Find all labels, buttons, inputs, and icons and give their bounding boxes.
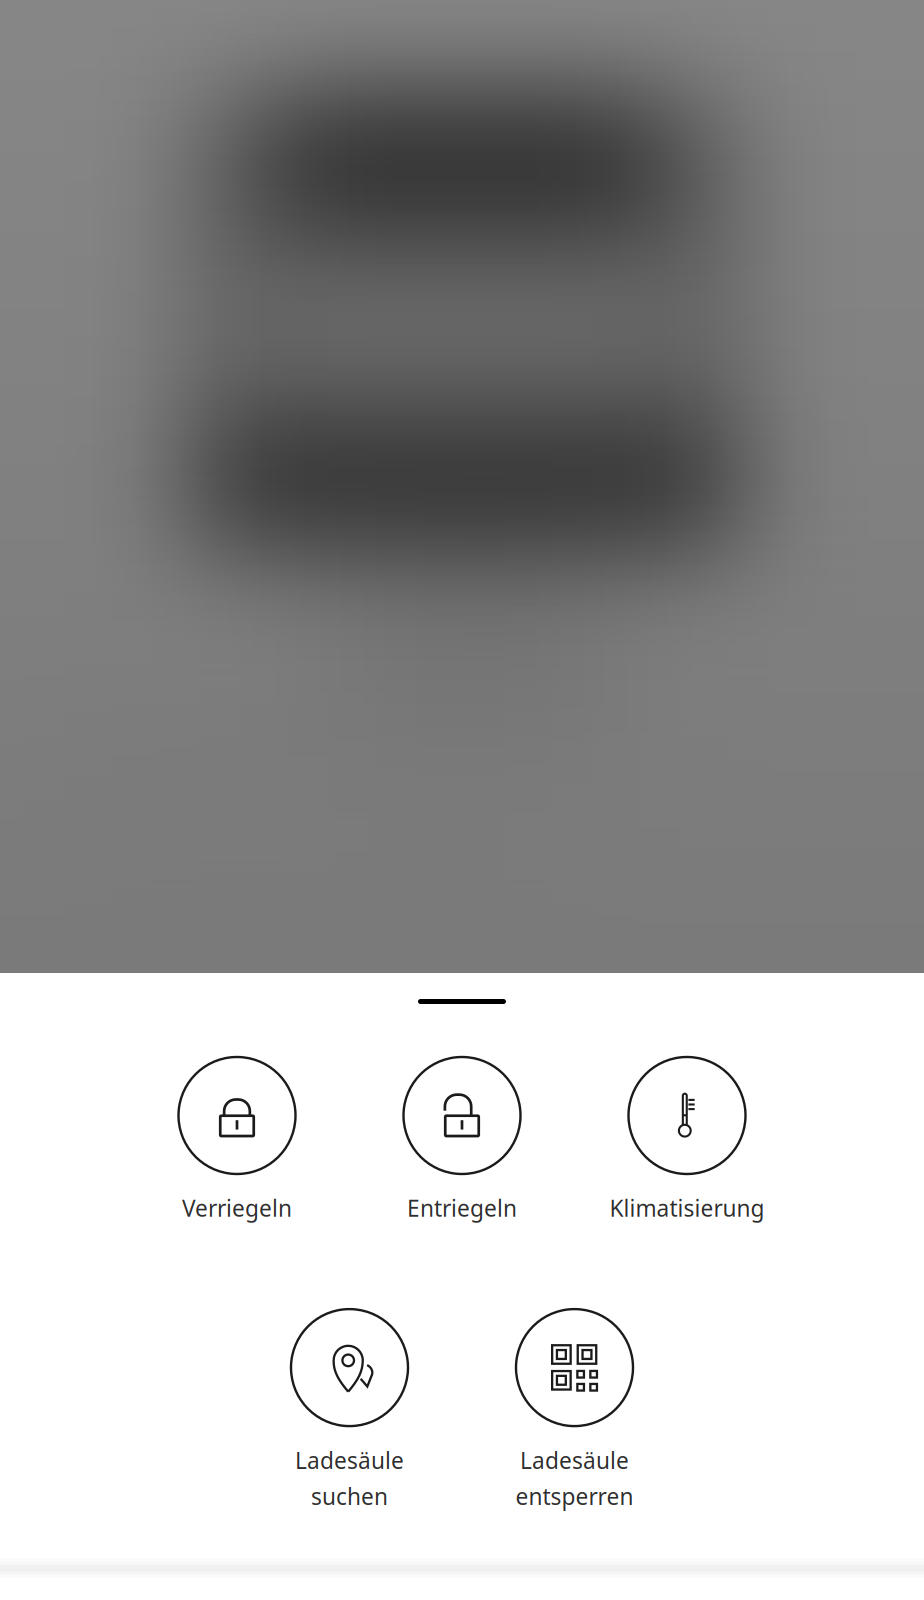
button[interactable]: Klimatisierung (574, 1057, 799, 1223)
staticText: suchen (311, 1481, 388, 1511)
button[interactable]: Entriegeln (349, 1057, 574, 1223)
staticText: Ladesäule (295, 1445, 404, 1475)
button[interactable]: Bereich vergrößern (418, 999, 506, 1004)
button[interactable]: Verriegeln (124, 1057, 349, 1223)
staticText: Klimatisierung (609, 1193, 764, 1223)
staticText: Ladesäule (520, 1445, 629, 1475)
staticText: entsperren (515, 1481, 633, 1511)
staticText: Entriegeln (407, 1193, 517, 1223)
staticText: Verriegeln (182, 1193, 292, 1223)
button[interactable]: Ladesäule (462, 1309, 687, 1511)
button[interactable]: Ladesäule (237, 1309, 462, 1511)
